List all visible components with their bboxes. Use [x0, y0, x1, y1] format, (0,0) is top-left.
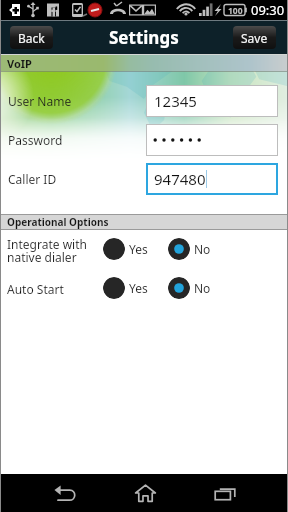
button[interactable]: Save — [233, 26, 276, 49]
staticText: Back — [18, 30, 45, 46]
button[interactable]: Option selected — [168, 277, 190, 299]
staticText: Caller ID — [8, 171, 57, 187]
staticText: Integrate with native dialer — [7, 236, 87, 265]
staticText: Settings — [109, 26, 179, 49]
staticText: 947480 — [154, 169, 206, 189]
button[interactable]: Option — [103, 277, 125, 299]
staticText: Yes — [129, 241, 148, 257]
staticText: Password — [8, 132, 63, 148]
staticText: Operational Options — [7, 215, 109, 229]
button[interactable]: Back — [10, 26, 53, 49]
button[interactable]: 12345 — [146, 85, 278, 117]
staticText: No — [194, 241, 211, 257]
staticText: Save — [241, 30, 268, 46]
button[interactable]: Option selected — [168, 238, 190, 260]
button[interactable]: Back — [45, 474, 85, 512]
staticText: User Name — [8, 93, 72, 109]
staticText: Auto Start — [7, 281, 64, 297]
staticText: Yes — [129, 280, 148, 296]
button[interactable]: Recent apps — [205, 474, 245, 512]
staticText: 12345 — [154, 91, 197, 111]
staticText: VoIP — [7, 56, 32, 71]
button[interactable] — [146, 124, 278, 156]
staticText: 100 — [228, 5, 243, 17]
button[interactable]: Home — [125, 474, 165, 512]
staticText: No — [194, 280, 211, 296]
button[interactable]: 947480 — [146, 163, 278, 195]
button[interactable]: Option — [103, 238, 125, 260]
staticText: 09:30 — [251, 1, 285, 19]
